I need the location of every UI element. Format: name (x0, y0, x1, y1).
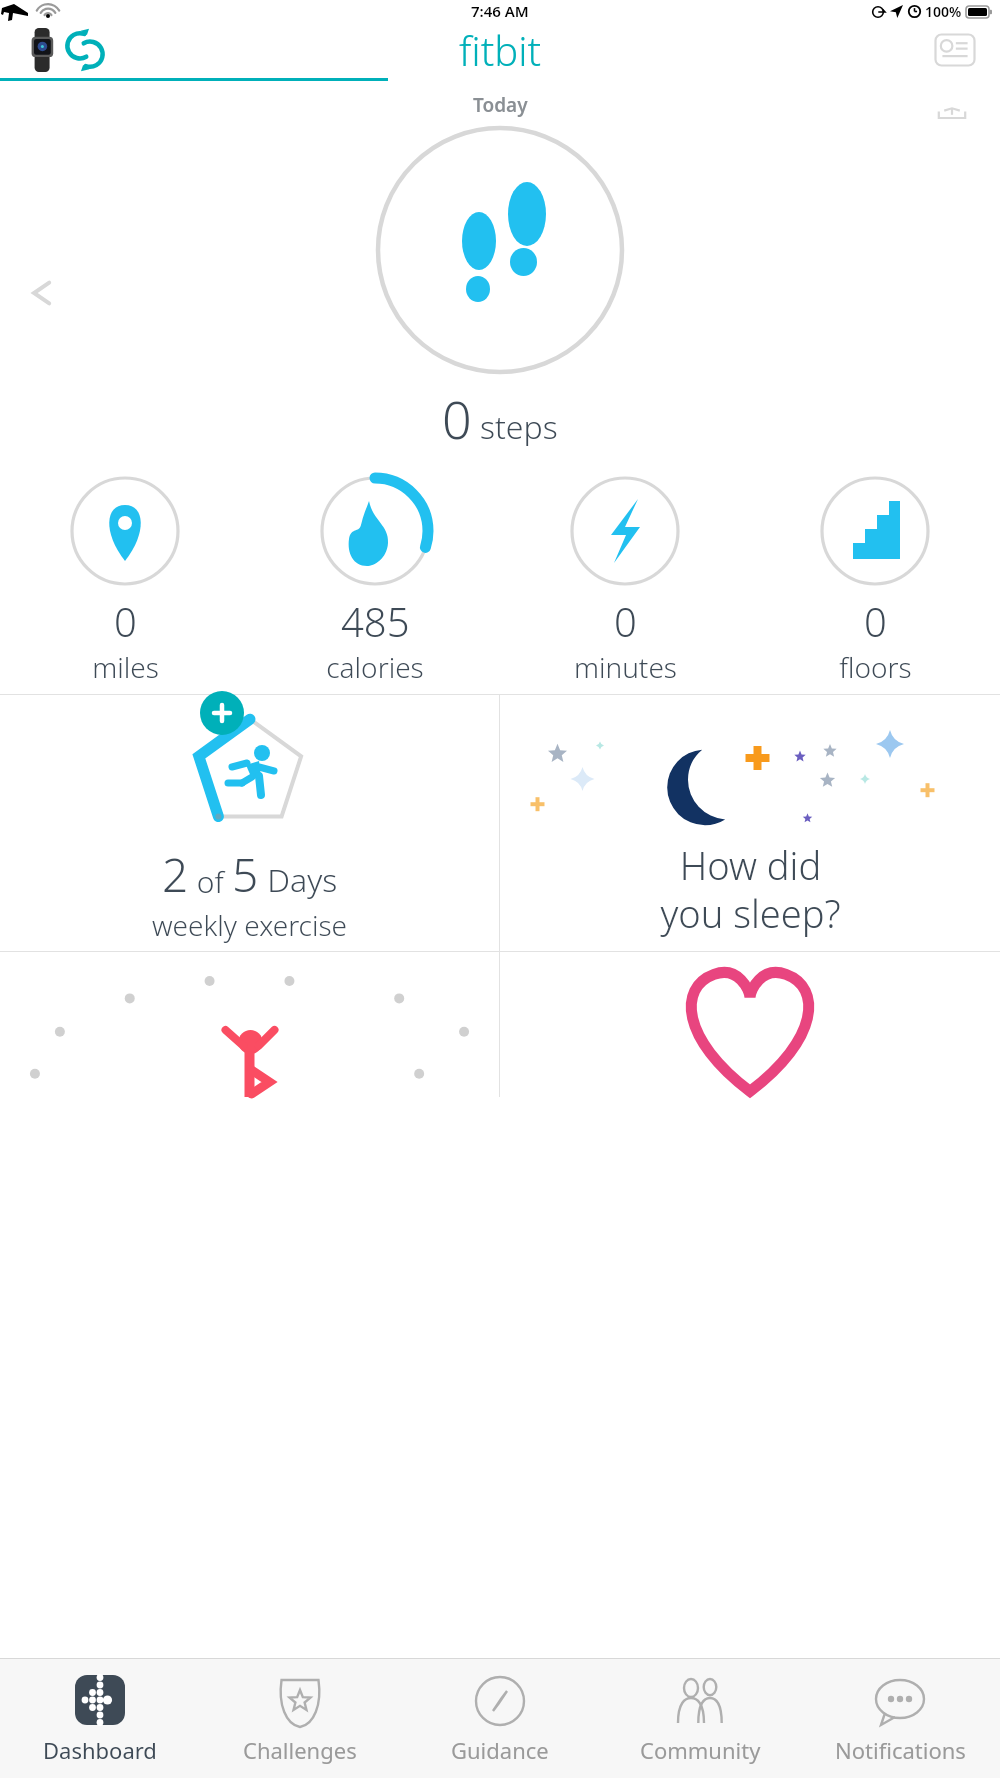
staticText: Today (473, 92, 528, 118)
button[interactable]: 2 (0, 695, 499, 951)
staticText: fitbit (459, 23, 542, 77)
staticText: 0 (114, 594, 137, 648)
button[interactable]: Challenges (200, 1659, 400, 1778)
button[interactable] (0, 952, 499, 1097)
button[interactable]: Notifications (800, 1659, 1000, 1778)
staticText: 0 (614, 594, 637, 648)
staticText: minutes (574, 648, 677, 686)
button[interactable]: Community (600, 1659, 800, 1778)
button[interactable]: Steps (376, 126, 624, 374)
button[interactable]: 0 (500, 472, 750, 690)
staticText: 2 (162, 843, 189, 906)
staticText: 7:46 AM (471, 1, 529, 21)
staticText: calories (326, 648, 424, 686)
button[interactable]: 0 (750, 472, 1000, 690)
button[interactable]: 485 (250, 472, 500, 690)
staticText: 100% (925, 2, 962, 21)
staticText: Guidance (451, 1735, 549, 1765)
staticText: 5 (232, 843, 259, 906)
staticText: 0 (442, 383, 472, 454)
button[interactable] (500, 952, 1000, 1097)
button[interactable]: Guidance (400, 1659, 600, 1778)
staticText: Dashboard (43, 1735, 157, 1765)
staticText: 0 (864, 594, 887, 648)
button[interactable]: Profile (932, 27, 978, 73)
staticText: steps (480, 405, 558, 449)
button[interactable]: Dashboard (0, 1659, 200, 1778)
staticText: Notifications (835, 1735, 966, 1765)
staticText: Days (259, 858, 338, 902)
button[interactable]: Add (200, 691, 244, 735)
staticText: floors (839, 648, 912, 686)
staticText: of (189, 861, 232, 902)
button[interactable]: 0 (0, 472, 250, 690)
staticText: weekly exercise (152, 906, 347, 944)
button[interactable]: Share (930, 108, 974, 118)
staticText: Challenges (243, 1735, 357, 1765)
staticText: 485 (341, 594, 410, 648)
button[interactable]: How did you sleep? (500, 695, 1000, 951)
staticText: Community (640, 1735, 761, 1765)
staticText: miles (92, 648, 159, 686)
button[interactable]: Sync device (28, 28, 106, 72)
staticText: How did you sleep? (660, 839, 841, 939)
button[interactable]: Previous (22, 273, 62, 313)
